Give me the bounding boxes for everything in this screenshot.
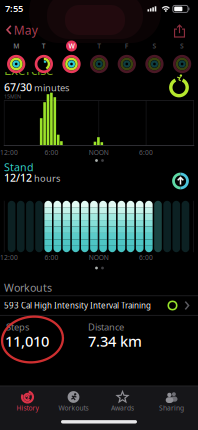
staticText: Steps [6,321,29,333]
button[interactable]: S [140,32,168,72]
staticText: 11,010 [5,331,49,351]
button[interactable]: Workouts [49,385,98,413]
staticText: 6:00 [139,253,153,262]
staticText: T [97,42,101,50]
staticText: Distance [88,321,124,333]
staticText: May [14,22,38,38]
staticText: NOON [89,253,109,262]
button[interactable]: Awards [98,385,147,413]
staticText: 12:00 [0,148,18,157]
staticText: 7:55 [5,2,23,15]
button[interactable]: History [3,385,52,413]
staticText: Exercise [4,61,54,79]
staticText: T [42,42,46,50]
button[interactable]: S [168,32,196,72]
button[interactable] [170,22,188,40]
button[interactable]: T [85,32,113,72]
staticText: 67/30 [4,80,32,94]
staticText: 593 Cal High Intensity Interval Training [4,300,151,311]
button[interactable]: 593 Cal High Intensity Interval Training [0,295,198,315]
staticText: 12/12 [4,170,32,185]
staticText: M [13,42,19,50]
staticText: Workouts [4,280,52,295]
button[interactable]: T [30,32,58,72]
staticText: S [180,42,184,50]
staticText: Awards [111,404,134,412]
button[interactable]: May [3,22,41,38]
button[interactable]: W [57,32,85,72]
button[interactable]: F [113,32,141,72]
staticText: 7.34 km [88,331,142,351]
staticText: W [68,42,74,50]
button[interactable]: M [2,32,30,72]
staticText: NOON [89,148,109,157]
staticText: 6:00 [139,148,153,157]
staticText: 6:00 [44,253,58,262]
staticText: S [152,42,156,50]
staticText: F [125,42,129,50]
staticText: Workouts [58,404,88,412]
staticText: minutes [34,81,69,94]
staticText: 6:00 [44,148,58,157]
staticText: hours [34,172,60,184]
staticText: 12:00 [0,253,18,262]
button[interactable]: Sharing [147,385,196,413]
staticText: 15MIN [4,93,21,100]
staticText: Sharing [159,404,184,412]
staticText: History [16,404,38,412]
staticText: Stand [4,160,34,174]
